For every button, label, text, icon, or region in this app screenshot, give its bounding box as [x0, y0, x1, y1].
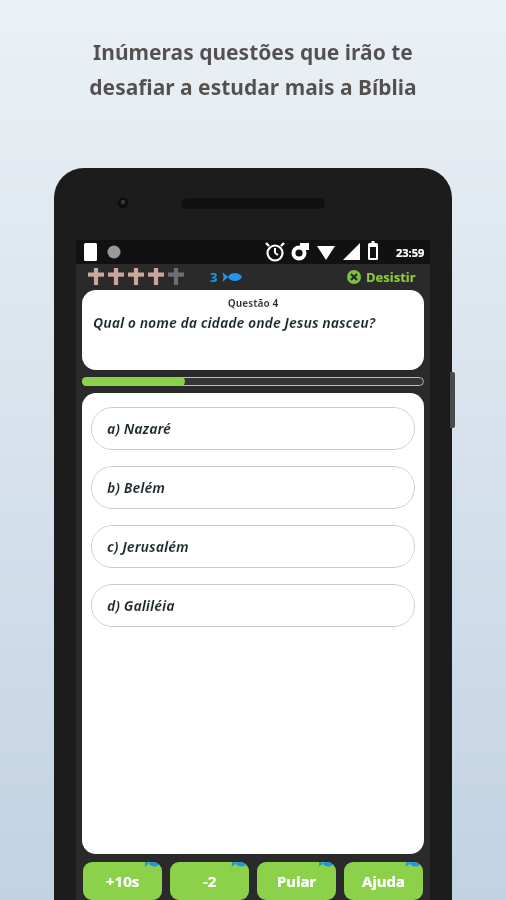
- staticText: Desistir: [366, 268, 416, 286]
- staticText: 3: [210, 268, 218, 286]
- button[interactable]: Desistir: [345, 266, 418, 288]
- staticText: desafiar a estudar mais a Bíblia: [89, 73, 417, 102]
- staticText: a) Nazaré: [107, 419, 171, 438]
- staticText: Pular: [277, 871, 317, 891]
- staticText: Inúmeras questões que irão te: [93, 38, 413, 67]
- button[interactable]: +10s: [83, 862, 162, 900]
- staticText: Questão 4: [93, 296, 413, 310]
- button[interactable]: -2: [170, 862, 249, 900]
- button[interactable]: d) Galiléia: [91, 584, 415, 627]
- staticText: Qual o nome da cidade onde Jesus nasceu?: [93, 313, 376, 332]
- button[interactable]: Ajuda: [344, 862, 423, 900]
- button[interactable]: a) Nazaré: [91, 407, 415, 450]
- staticText: b) Belém: [107, 478, 165, 497]
- staticText: +10s: [106, 871, 140, 891]
- staticText: d) Galiléia: [107, 596, 175, 615]
- staticText: -2: [203, 871, 217, 891]
- button[interactable]: Pular: [257, 862, 336, 900]
- staticText: c) Jerusalém: [107, 537, 189, 556]
- button[interactable]: b) Belém: [91, 466, 415, 509]
- staticText: Ajuda: [362, 871, 406, 891]
- staticText: 23:59: [396, 245, 425, 260]
- button[interactable]: c) Jerusalém: [91, 525, 415, 568]
